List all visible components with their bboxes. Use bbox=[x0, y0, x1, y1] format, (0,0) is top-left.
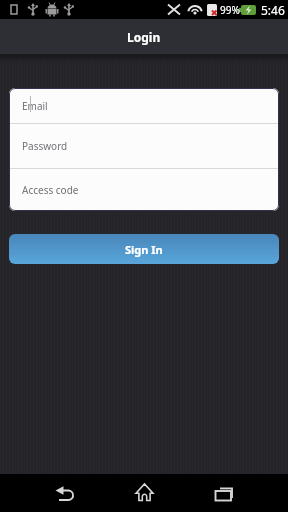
staticText: Password bbox=[22, 139, 68, 153]
staticText: Sign In bbox=[125, 242, 163, 257]
staticText: 99% bbox=[220, 3, 240, 17]
button[interactable]: Access code bbox=[9, 169, 279, 211]
button[interactable] bbox=[192, 474, 288, 512]
button[interactable]: Sign In bbox=[9, 234, 279, 264]
button[interactable]: Email bbox=[9, 88, 279, 123]
staticText: Login bbox=[127, 29, 161, 45]
button[interactable] bbox=[0, 474, 96, 512]
button[interactable] bbox=[96, 474, 192, 512]
button[interactable]: Password bbox=[9, 124, 279, 168]
staticText: Email bbox=[22, 99, 48, 113]
staticText: 5:46 bbox=[261, 2, 285, 18]
staticText: Access code bbox=[22, 183, 79, 197]
